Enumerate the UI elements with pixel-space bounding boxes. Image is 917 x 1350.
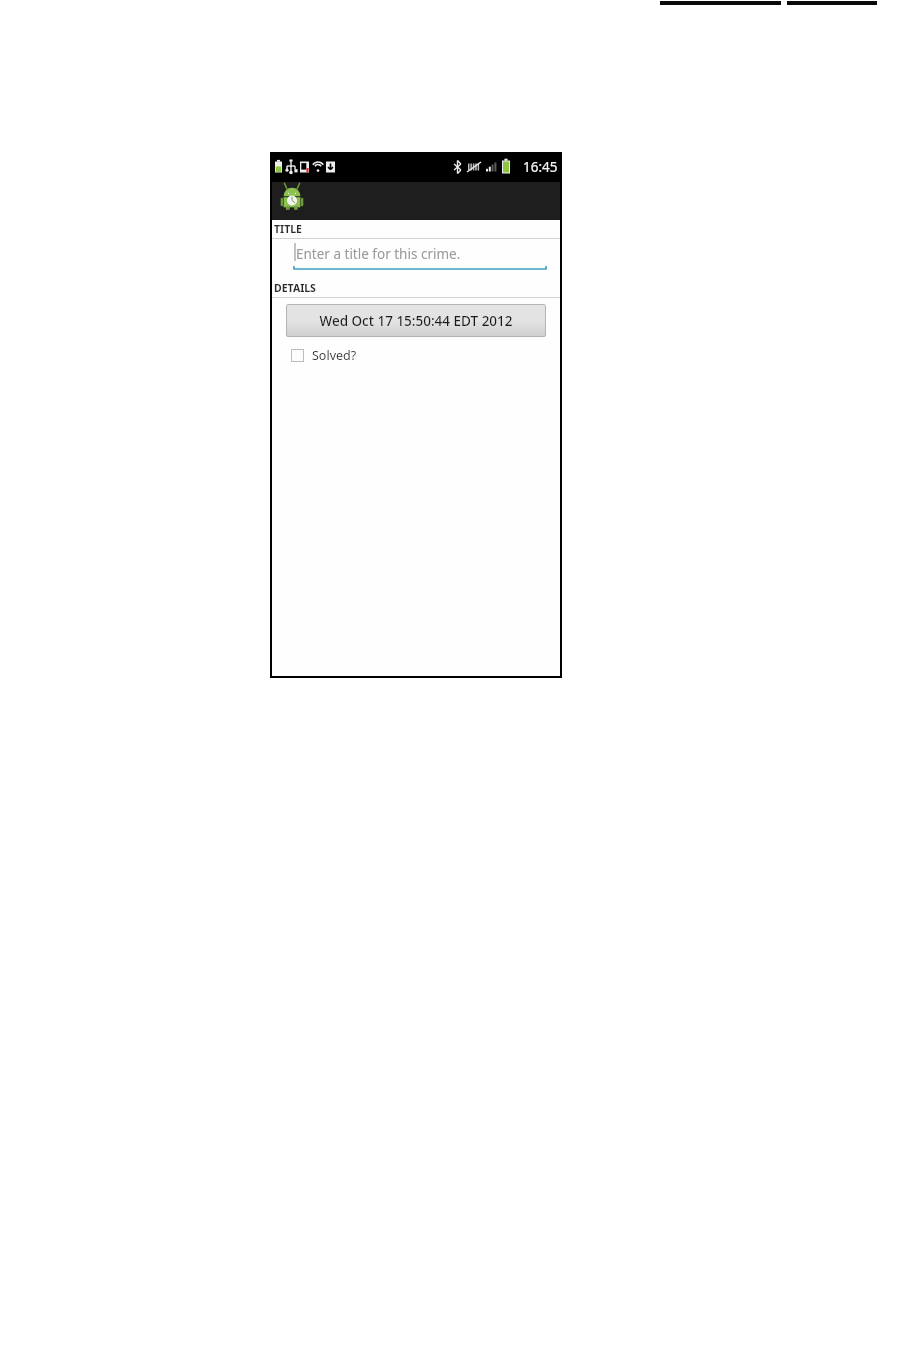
staticText: Solved? [312,347,357,364]
staticText: Wed Oct 17 15:50:44 EDT 2012 [319,312,513,330]
button[interactable]: Wed Oct 17 15:50:44 EDT 2012 [286,304,546,337]
staticText: TITLE [274,222,302,236]
button[interactable]: Enter a title for this crime. [270,239,562,279]
button[interactable]: App icon, up [278,187,306,215]
staticText: DETAILS [274,281,316,295]
staticText: 16:45 [523,158,558,176]
button[interactable]: Solved? [270,342,562,368]
staticText: Enter a title for this crime. [296,245,461,263]
